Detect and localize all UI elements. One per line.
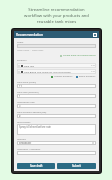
button[interactable]: Save draft: [17, 163, 55, 169]
staticText: Applicator / operator: [17, 147, 41, 150]
button[interactable]: [17, 151, 96, 155]
staticText: Recommendation: [16, 33, 44, 37]
staticText: Broadcast: [19, 141, 32, 145]
staticText: 0.00: [91, 70, 95, 73]
button[interactable]: Spray till sheet before rain: [17, 124, 96, 135]
staticText: Method: [17, 137, 26, 140]
staticText: Total area (acres): [17, 80, 36, 83]
staticText: Field mix: [24, 64, 35, 67]
staticText: Application rate: [17, 100, 35, 103]
button[interactable]: Broadcast: [17, 141, 96, 145]
staticText: Create blank recommendation: [63, 54, 96, 57]
staticText: Instructions: [17, 120, 31, 123]
button[interactable]: Batch products: [76, 75, 96, 78]
staticText: 0.00: [91, 64, 95, 67]
staticText: Client: [17, 40, 24, 43]
staticText: Products: [17, 59, 27, 62]
button[interactable]: 8: [17, 114, 96, 118]
staticText: Total amount applied (gal): [17, 110, 47, 113]
staticText: 8: [19, 115, 21, 118]
staticText: Tank Blend 200 (reuse for soil technolog…: [24, 70, 71, 73]
button[interactable]: Field mix: [17, 63, 96, 68]
button[interactable]: [17, 44, 96, 48]
staticText: Legal Name · Field notes: [17, 49, 44, 52]
staticText: Total rate (amount): [17, 90, 39, 93]
button[interactable]: Submit: [57, 163, 96, 169]
staticText: 12: [19, 85, 22, 88]
staticText: Streamline recommendation workflow with …: [24, 7, 89, 25]
button[interactable]: Create blank recommendation: [17, 54, 96, 57]
staticText: Spray till sheet before rain: [19, 125, 51, 129]
button[interactable]: 4: [17, 104, 96, 108]
staticText: 1: [19, 95, 21, 98]
button[interactable]: Close: [93, 33, 97, 37]
button[interactable]: Already products: [51, 75, 73, 78]
staticText: 4: [19, 105, 21, 108]
staticText: Already products: [54, 75, 73, 78]
button[interactable]: Tank Blend 200 (reuse for soil technolog…: [17, 69, 96, 74]
button[interactable]: 12: [17, 84, 96, 88]
staticText: Submit: [72, 164, 81, 168]
staticText: Batch products: [79, 75, 96, 78]
button[interactable]: 1: [17, 94, 96, 98]
staticText: Save draft: [30, 164, 43, 168]
